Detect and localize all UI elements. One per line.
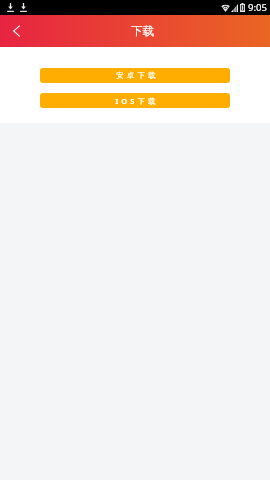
staticText: 9:05 xyxy=(248,1,267,14)
button[interactable]: 安卓下载 xyxy=(40,68,230,83)
staticText: IOS下载 xyxy=(115,96,159,106)
staticText: 下载 xyxy=(131,24,154,38)
button[interactable]: Back xyxy=(0,15,32,47)
staticText: 安卓下载 xyxy=(116,71,159,81)
button[interactable]: IOS下载 xyxy=(40,93,230,108)
